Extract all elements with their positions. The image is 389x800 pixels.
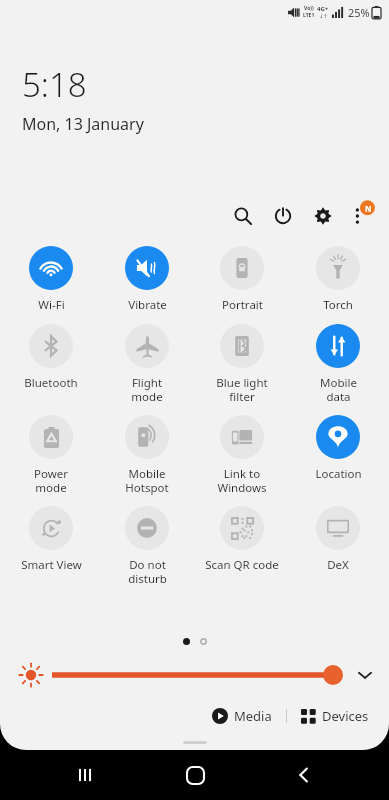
button[interactable]: Media — [208, 703, 276, 729]
staticText: Scan QR code — [205, 557, 279, 573]
button[interactable]: Scan QR code — [197, 506, 287, 573]
button[interactable]: DeX — [293, 506, 383, 573]
button[interactable]: Do not disturb — [102, 506, 192, 586]
staticText: 5:18 — [22, 62, 87, 107]
button[interactable]: Location — [293, 415, 383, 482]
button[interactable]: Smart View — [6, 506, 96, 573]
staticText: Mobile data — [320, 375, 357, 404]
button[interactable]: Torch — [293, 246, 383, 313]
button[interactable]: Settings — [305, 198, 341, 234]
button[interactable]: Recents — [61, 751, 109, 799]
staticText: Location — [315, 466, 362, 482]
staticText: Vibrate — [128, 297, 167, 313]
button[interactable]: Portrait — [197, 246, 287, 313]
button[interactable]: Blue light filter — [197, 324, 287, 404]
staticText: Torch — [323, 297, 353, 313]
button[interactable]: More options — [343, 198, 379, 234]
staticText: Vo)) — [304, 5, 314, 12]
button[interactable]: Power mode — [6, 415, 96, 495]
button[interactable]: Vibrate — [102, 246, 192, 313]
staticText: DeX — [327, 557, 349, 573]
button[interactable]: Home — [171, 751, 219, 799]
button[interactable]: Expand brightness — [347, 657, 383, 693]
staticText: Do not disturb — [128, 557, 167, 586]
staticText: Portrait — [222, 297, 263, 313]
button[interactable]: Search — [225, 198, 261, 234]
button[interactable]: Mobile data — [293, 324, 383, 404]
staticText: Blue light filter — [216, 375, 268, 404]
staticText: Mobile Hotspot — [125, 466, 169, 495]
staticText: ↓↑ — [319, 13, 328, 19]
staticText: 25% — [348, 5, 370, 20]
staticText: Media — [234, 707, 272, 725]
staticText: Power mode — [34, 466, 68, 495]
button[interactable]: Power off — [265, 198, 301, 234]
button[interactable]: Bluetooth — [6, 324, 96, 391]
button[interactable] — [48, 660, 347, 690]
staticText: 4G+ — [317, 5, 329, 13]
staticText: LTE1 — [303, 12, 315, 19]
staticText: Mon, 13 January — [22, 113, 144, 135]
staticText: Link to Windows — [217, 466, 267, 495]
staticText: Bluetooth — [24, 375, 78, 391]
button[interactable]: Back — [280, 751, 328, 799]
staticText: Smart View — [21, 557, 82, 573]
staticText: Devices — [322, 707, 369, 725]
staticText: Wi-Fi — [38, 297, 65, 313]
button[interactable]: Devices — [297, 703, 373, 729]
staticText: N — [365, 203, 372, 214]
button[interactable]: Flight mode — [102, 324, 192, 404]
button[interactable]: Mobile Hotspot — [102, 415, 192, 495]
button[interactable]: Link to Windows — [197, 415, 287, 495]
button[interactable]: Wi-Fi — [6, 246, 96, 313]
staticText: Flight mode — [131, 375, 163, 404]
